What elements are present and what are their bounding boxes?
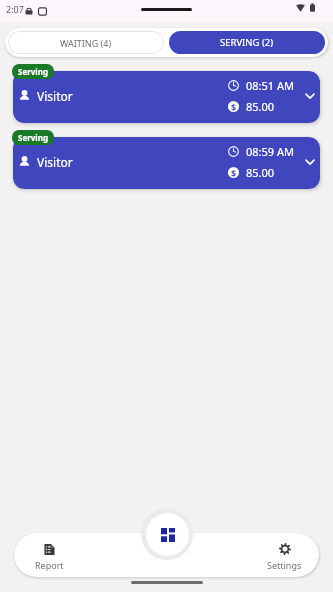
- button[interactable]: WAITING (4): [8, 31, 164, 54]
- staticText: Visitor: [37, 154, 73, 170]
- staticText: SERVING (2): [220, 36, 274, 49]
- staticText: Settings: [267, 559, 302, 571]
- staticText: Visitor: [37, 88, 73, 104]
- button[interactable]: Dashboard: [146, 513, 189, 556]
- button[interactable]: Settings: [249, 533, 319, 577]
- button[interactable]: SERVING (2): [169, 31, 325, 54]
- staticText: $: [231, 167, 237, 178]
- staticText: Report: [35, 559, 64, 571]
- staticText: Serving: [18, 66, 48, 77]
- staticText: WAITING (4): [60, 37, 112, 49]
- staticText: $: [231, 101, 237, 112]
- staticText: 85.00: [246, 165, 275, 180]
- staticText: Serving: [18, 132, 48, 143]
- button[interactable]: Visitor: [13, 71, 320, 123]
- staticText: 85.00: [246, 99, 275, 114]
- button[interactable]: Visitor: [13, 137, 320, 189]
- button[interactable]: Report: [14, 533, 84, 577]
- staticText: 2:07: [6, 3, 24, 15]
- staticText: 08:59 AM: [246, 144, 294, 159]
- staticText: 08:51 AM: [246, 78, 294, 93]
